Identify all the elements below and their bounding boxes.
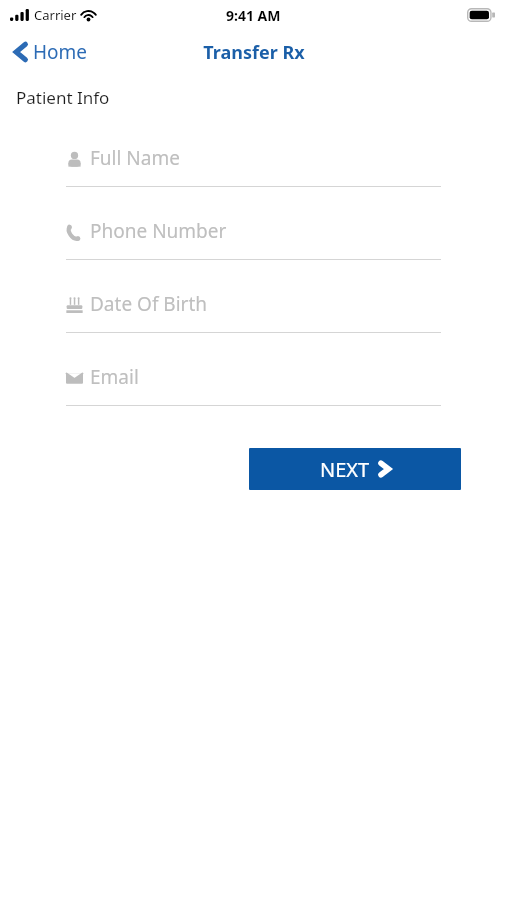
button[interactable]: Full Name bbox=[0, 130, 507, 203]
other: Phone Number bbox=[66, 224, 83, 241]
staticText: Full Name bbox=[90, 145, 180, 171]
other: Date Of Birth bbox=[66, 297, 83, 314]
staticText: Patient Info bbox=[16, 86, 110, 109]
staticText: Carrier bbox=[34, 6, 77, 24]
button[interactable]: Email bbox=[0, 349, 507, 422]
other: Email bbox=[66, 370, 83, 387]
staticText: Transfer Rx bbox=[203, 40, 305, 65]
staticText: NEXT bbox=[320, 456, 370, 483]
staticText: 9:41 AM bbox=[226, 6, 281, 25]
button[interactable]: Date Of Birth bbox=[0, 276, 507, 349]
staticText: Home bbox=[33, 39, 88, 65]
button[interactable]: Home bbox=[0, 33, 102, 71]
other: Full Name bbox=[66, 151, 83, 168]
staticText: Date Of Birth bbox=[90, 291, 208, 317]
staticText: Email bbox=[90, 364, 139, 390]
button[interactable]: NEXT bbox=[249, 448, 461, 490]
button[interactable]: Phone Number bbox=[0, 203, 507, 276]
staticText: Phone Number bbox=[90, 218, 227, 244]
